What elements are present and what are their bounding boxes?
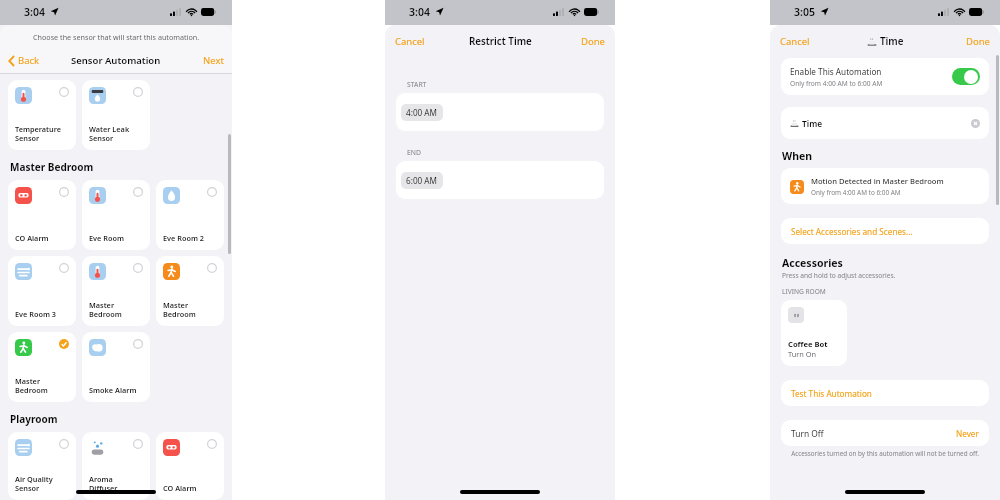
staticText: Coffee Bot <box>788 339 828 349</box>
staticText: Test This Automation <box>791 388 872 399</box>
staticText: Sensor Automation <box>71 54 161 67</box>
staticText: Master Bedroom <box>10 160 94 174</box>
button[interactable]: Aroma Diffuser <box>82 432 150 500</box>
staticText: Only from 4:00 AM to 6:00 AM <box>790 79 883 88</box>
button[interactable]: Master Bedroom <box>156 256 224 326</box>
button[interactable]: Cancel <box>385 31 431 52</box>
staticText: END <box>407 148 421 157</box>
button[interactable]: Eve Room 3 <box>8 256 76 326</box>
button[interactable]: Select Accessories and Scenes... <box>781 218 989 244</box>
staticText: Playroom <box>10 412 58 426</box>
button[interactable]: Cancel <box>770 31 816 52</box>
button[interactable]: 6:00 AM <box>396 161 604 199</box>
staticText: Accessories <box>782 256 843 270</box>
button[interactable]: Eve Room 2 <box>156 180 224 250</box>
staticText: Press and hold to adjust accessories. <box>782 271 896 280</box>
staticText: Master Bedroom <box>89 300 122 319</box>
button[interactable]: 4:00 AM <box>396 93 604 131</box>
button[interactable]: Time <box>781 107 989 139</box>
staticText: Turn Off <box>791 428 824 439</box>
button[interactable]: Water Leak Sensor <box>82 80 150 150</box>
staticText: Master Bedroom <box>163 300 196 319</box>
button[interactable]: Back <box>7 51 42 70</box>
staticText: 3:05 <box>794 5 815 19</box>
staticText: LIVING ROOM <box>782 287 826 296</box>
staticText: 6:00 AM <box>406 175 438 186</box>
staticText: Eve Room 3 <box>15 309 57 319</box>
staticText: Master Bedroom <box>15 376 48 395</box>
staticText: Never <box>956 428 979 439</box>
button[interactable]: Air Quality Sensor <box>8 432 76 500</box>
staticText: Eve Room <box>89 233 124 243</box>
staticText: CO Alarm <box>15 233 49 243</box>
staticText: Time <box>802 118 823 129</box>
button[interactable]: Done <box>960 31 1000 52</box>
staticText: 4:00 AM <box>406 107 438 118</box>
staticText: Only from 4:00 AM to 6:00 AM <box>811 188 901 197</box>
button[interactable]: Enable This Automation <box>781 58 989 95</box>
button[interactable]: Turn Off <box>781 420 989 446</box>
button[interactable]: CO Alarm <box>8 180 76 250</box>
staticText: START <box>407 80 427 89</box>
staticText: Choose the sensor that will start this a… <box>33 32 200 42</box>
button[interactable]: Remove <box>971 119 980 128</box>
staticText: Accessories turned on by this automation… <box>784 449 986 458</box>
button[interactable]: Eve Room <box>82 180 150 250</box>
staticText: CO Alarm <box>163 483 197 493</box>
button[interactable]: Enable This Automation toggle <box>952 68 980 85</box>
staticText: 3:04 <box>409 5 430 19</box>
button[interactable]: Done <box>575 31 615 52</box>
button[interactable]: Test This Automation <box>781 380 989 406</box>
staticText: Temperature Sensor <box>15 124 61 143</box>
button[interactable]: Coffee Bot <box>781 300 847 366</box>
staticText: Turn On <box>788 349 817 359</box>
button[interactable]: CO Alarm <box>156 432 224 500</box>
staticText: Select Accessories and Scenes... <box>791 226 913 237</box>
button[interactable]: Smoke Alarm <box>82 332 150 402</box>
staticText: Motion Detected in Master Bedroom <box>811 176 944 186</box>
staticText: Air Quality Sensor <box>15 474 53 493</box>
button[interactable]: Master Bedroom <box>8 332 76 402</box>
staticText: Time <box>880 35 904 48</box>
staticText: Eve Room 2 <box>163 233 205 243</box>
staticText: Back <box>18 54 40 67</box>
staticText: Aroma Diffuser <box>89 474 118 493</box>
staticText: 3:04 <box>24 5 45 19</box>
button[interactable]: Motion Detected in Master Bedroom <box>781 168 989 204</box>
button[interactable]: Master Bedroom <box>82 256 150 326</box>
button[interactable]: Temperature Sensor <box>8 80 76 150</box>
staticText: Enable This Automation <box>790 66 882 77</box>
staticText: Water Leak Sensor <box>89 124 130 143</box>
staticText: When <box>782 149 813 163</box>
staticText: Restrict Time <box>469 35 532 48</box>
staticText: Smoke Alarm <box>89 385 137 395</box>
button[interactable]: Next <box>195 50 232 71</box>
